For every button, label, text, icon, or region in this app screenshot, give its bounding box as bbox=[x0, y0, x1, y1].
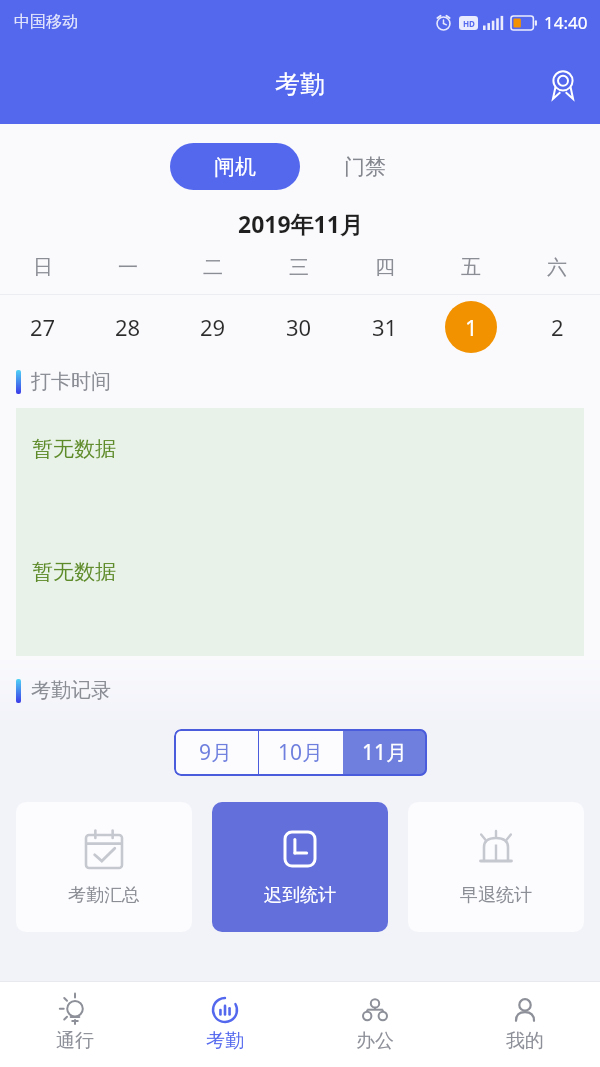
staticText: 五 bbox=[461, 255, 481, 280]
button[interactable]: 1 bbox=[428, 301, 514, 353]
button[interactable]: 门禁 bbox=[300, 143, 430, 190]
staticText: 迟到统计 bbox=[264, 884, 336, 907]
staticText: 通行 bbox=[56, 1029, 94, 1053]
staticText: 10月 bbox=[278, 738, 324, 767]
button[interactable]: 通行 bbox=[0, 981, 150, 1067]
button[interactable]: 暂无数据 bbox=[16, 408, 584, 656]
staticText: 三 bbox=[289, 255, 309, 280]
staticText: 11月 bbox=[362, 738, 408, 767]
staticText: 2 bbox=[551, 312, 564, 342]
staticText: 办公 bbox=[356, 1029, 394, 1053]
staticText: 闸机 bbox=[214, 154, 256, 180]
staticText: 考勤 bbox=[275, 69, 325, 100]
button[interactable]: 早退统计 bbox=[408, 802, 584, 932]
button[interactable]: 28 bbox=[85, 301, 170, 353]
button[interactable]: 30 bbox=[256, 301, 342, 353]
staticText: 二 bbox=[203, 255, 223, 280]
staticText: 我的 bbox=[506, 1029, 544, 1053]
staticText: 29 bbox=[200, 312, 226, 342]
staticText: 打卡时间 bbox=[31, 369, 111, 394]
staticText: 四 bbox=[375, 255, 395, 280]
button[interactable]: 我的 bbox=[450, 981, 600, 1067]
button[interactable]: 2 bbox=[514, 301, 600, 353]
button[interactable]: 9月 bbox=[174, 729, 258, 776]
staticText: 30 bbox=[286, 312, 312, 342]
staticText: 门禁 bbox=[344, 154, 386, 180]
button[interactable]: 11月 bbox=[343, 729, 427, 776]
staticText: 2019年11月 bbox=[238, 208, 363, 239]
button[interactable]: 办公 bbox=[300, 981, 450, 1067]
staticText: 9月 bbox=[199, 738, 233, 767]
button[interactable]: 考勤汇总 bbox=[16, 802, 192, 932]
staticText: 早退统计 bbox=[460, 884, 532, 907]
staticText: 考勤 bbox=[206, 1029, 244, 1053]
staticText: 暂无数据 bbox=[32, 559, 116, 585]
button[interactable]: 27 bbox=[0, 301, 85, 353]
staticText: 考勤记录 bbox=[31, 678, 111, 703]
staticText: HD bbox=[463, 18, 475, 29]
button[interactable]: 奖章 bbox=[542, 63, 584, 105]
button[interactable]: 考勤 bbox=[150, 981, 300, 1067]
staticText: 暂无数据 bbox=[32, 436, 116, 462]
staticText: 考勤汇总 bbox=[68, 884, 140, 907]
staticText: 六 bbox=[547, 255, 567, 280]
staticText: 一 bbox=[118, 255, 138, 280]
button[interactable]: 31 bbox=[342, 301, 428, 353]
staticText: 27 bbox=[30, 312, 56, 342]
staticText: 14:40 bbox=[544, 11, 588, 34]
button[interactable]: 10月 bbox=[259, 729, 343, 776]
staticText: 28 bbox=[115, 312, 141, 342]
staticText: 日 bbox=[33, 255, 53, 280]
staticText: 1 bbox=[465, 312, 478, 342]
staticText: 中国移动 bbox=[14, 12, 78, 32]
button[interactable]: 29 bbox=[170, 301, 256, 353]
staticText: 31 bbox=[372, 312, 398, 342]
button[interactable]: 迟到统计 bbox=[212, 802, 388, 932]
button[interactable]: 闸机 bbox=[170, 143, 300, 190]
